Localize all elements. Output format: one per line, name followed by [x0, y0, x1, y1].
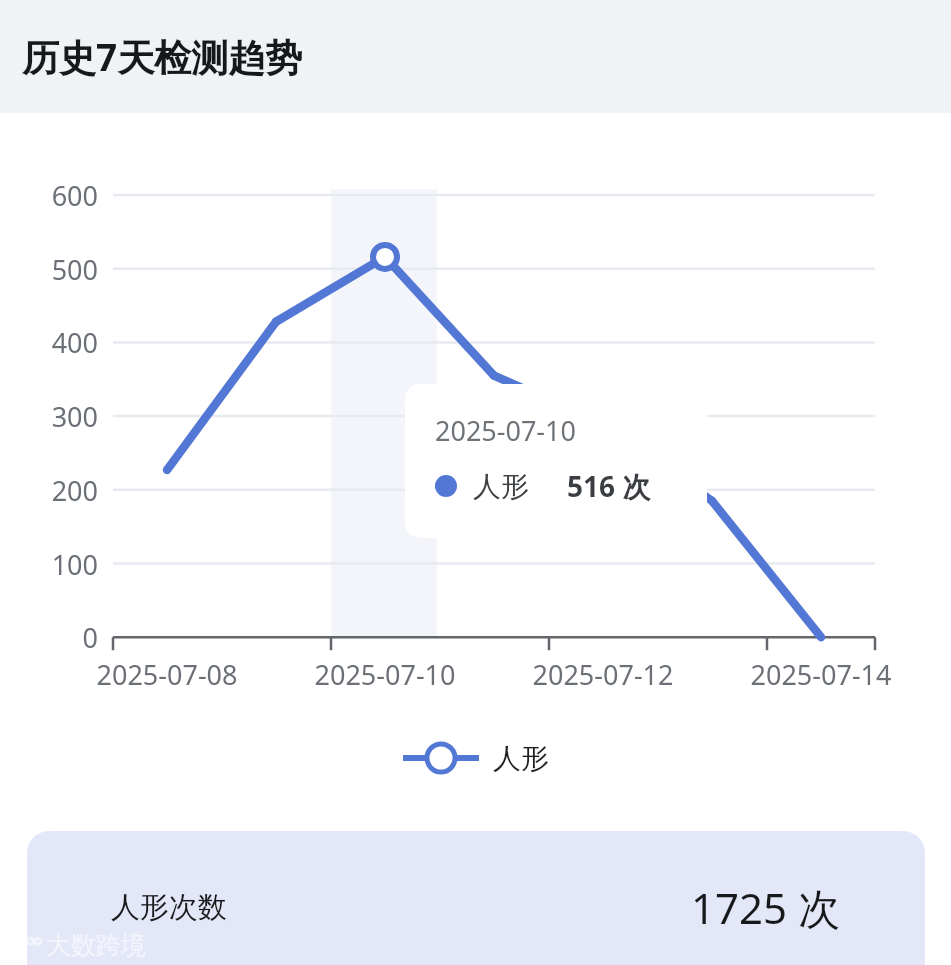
button[interactable]: 人形 [0, 723, 951, 793]
staticText: 400 [30, 324, 98, 361]
staticText: 2025-07-12 [518, 656, 688, 693]
staticText: 100 [30, 546, 98, 583]
staticText: 历史7天检测趋势 [22, 31, 303, 82]
staticText: 2025-07-08 [82, 656, 252, 693]
staticText: 2025-07-10 [300, 656, 470, 693]
staticText: 2025-07-10 [435, 412, 576, 449]
staticText: 500 [30, 251, 98, 288]
button[interactable]: 人形次数 [27, 831, 925, 965]
staticText: 人形 [473, 469, 529, 504]
button[interactable]: 600 [0, 113, 951, 713]
staticText: 1725 次 [691, 879, 841, 936]
staticText: 2025-07-14 [736, 656, 906, 693]
button[interactable]: 2025-07-10 [405, 384, 707, 538]
staticText: 516 次 [567, 467, 651, 505]
other: Watermark [8, 930, 146, 961]
staticText: 300 [30, 398, 98, 435]
staticText: 人形次数 [111, 889, 227, 926]
staticText: 0 [30, 619, 98, 656]
staticText: 人形 [493, 741, 549, 776]
staticText: 600 [30, 177, 98, 214]
staticText: 大数跨境 [46, 930, 146, 961]
staticText: 200 [30, 472, 98, 509]
